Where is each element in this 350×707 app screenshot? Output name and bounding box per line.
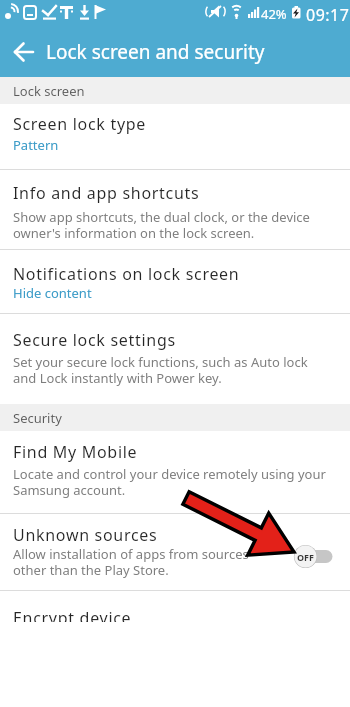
- staticText: Find My Mobile: [13, 441, 138, 463]
- staticText: Secure lock settings: [13, 329, 176, 351]
- button[interactable]: [0, 26, 350, 77]
- staticText: Lock screen and security: [46, 39, 265, 65]
- staticText: Security: [13, 409, 62, 427]
- button[interactable]: Find My Mobile: [0, 431, 350, 513]
- staticText: Lock screen: [13, 82, 85, 100]
- staticText: 09:17: [306, 4, 350, 26]
- button[interactable]: Screen lock type: [0, 104, 350, 169]
- button[interactable]: OFF: [292, 543, 338, 571]
- staticText: Set your secure lock functions, such as …: [13, 353, 308, 387]
- staticText: Info and app shortcuts: [13, 182, 200, 204]
- staticText: Pattern: [13, 136, 59, 154]
- button[interactable]: Unknown sources: [0, 514, 350, 590]
- staticText: 42%: [261, 5, 287, 23]
- button[interactable]: Info and app shortcuts: [0, 170, 350, 249]
- staticText: Encrypt device: [13, 607, 132, 629]
- staticText: Notifications on lock screen: [13, 263, 240, 285]
- button[interactable]: Secure lock settings: [0, 314, 350, 404]
- staticText: Hide content: [13, 284, 92, 302]
- staticText: Locate and control your device remotely …: [13, 465, 326, 499]
- staticText: OFF: [297, 551, 315, 563]
- staticText: Screen lock type: [13, 113, 147, 135]
- staticText: Unknown sources: [13, 524, 158, 546]
- staticText: Show app shortcuts, the dual clock, or t…: [13, 208, 310, 242]
- staticText: Allow installation of apps from sources …: [13, 545, 249, 579]
- button[interactable]: Notifications on lock screen: [0, 250, 350, 313]
